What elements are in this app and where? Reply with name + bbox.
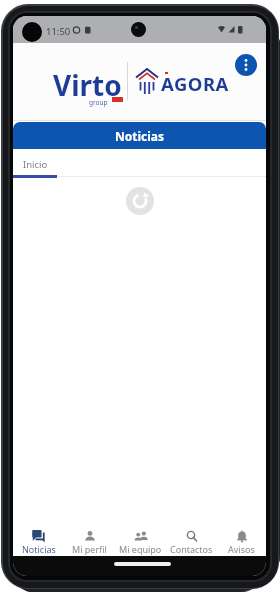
staticText: Virto: [53, 66, 122, 104]
button[interactable]: Avisos: [217, 530, 266, 558]
button[interactable]: Mi perfil: [64, 530, 115, 558]
staticText: Avisos: [228, 543, 255, 555]
staticText: Inicio: [23, 158, 48, 171]
button[interactable]: Noticias: [13, 530, 64, 558]
staticText: AGORA: [161, 71, 229, 96]
button[interactable]: Mi equipo: [115, 530, 166, 558]
button[interactable]: [235, 54, 257, 76]
staticText: Contactos: [170, 543, 213, 555]
staticText: Noticias: [115, 128, 165, 144]
staticText: Noticias: [22, 543, 56, 555]
staticText: Mi perfil: [72, 543, 107, 555]
staticText: Mi equipo: [119, 543, 162, 555]
button[interactable]: Inicio: [13, 149, 77, 178]
staticText: 11:50: [46, 25, 71, 38]
staticText: group: [89, 98, 108, 107]
button[interactable]: Contactos: [166, 530, 217, 558]
